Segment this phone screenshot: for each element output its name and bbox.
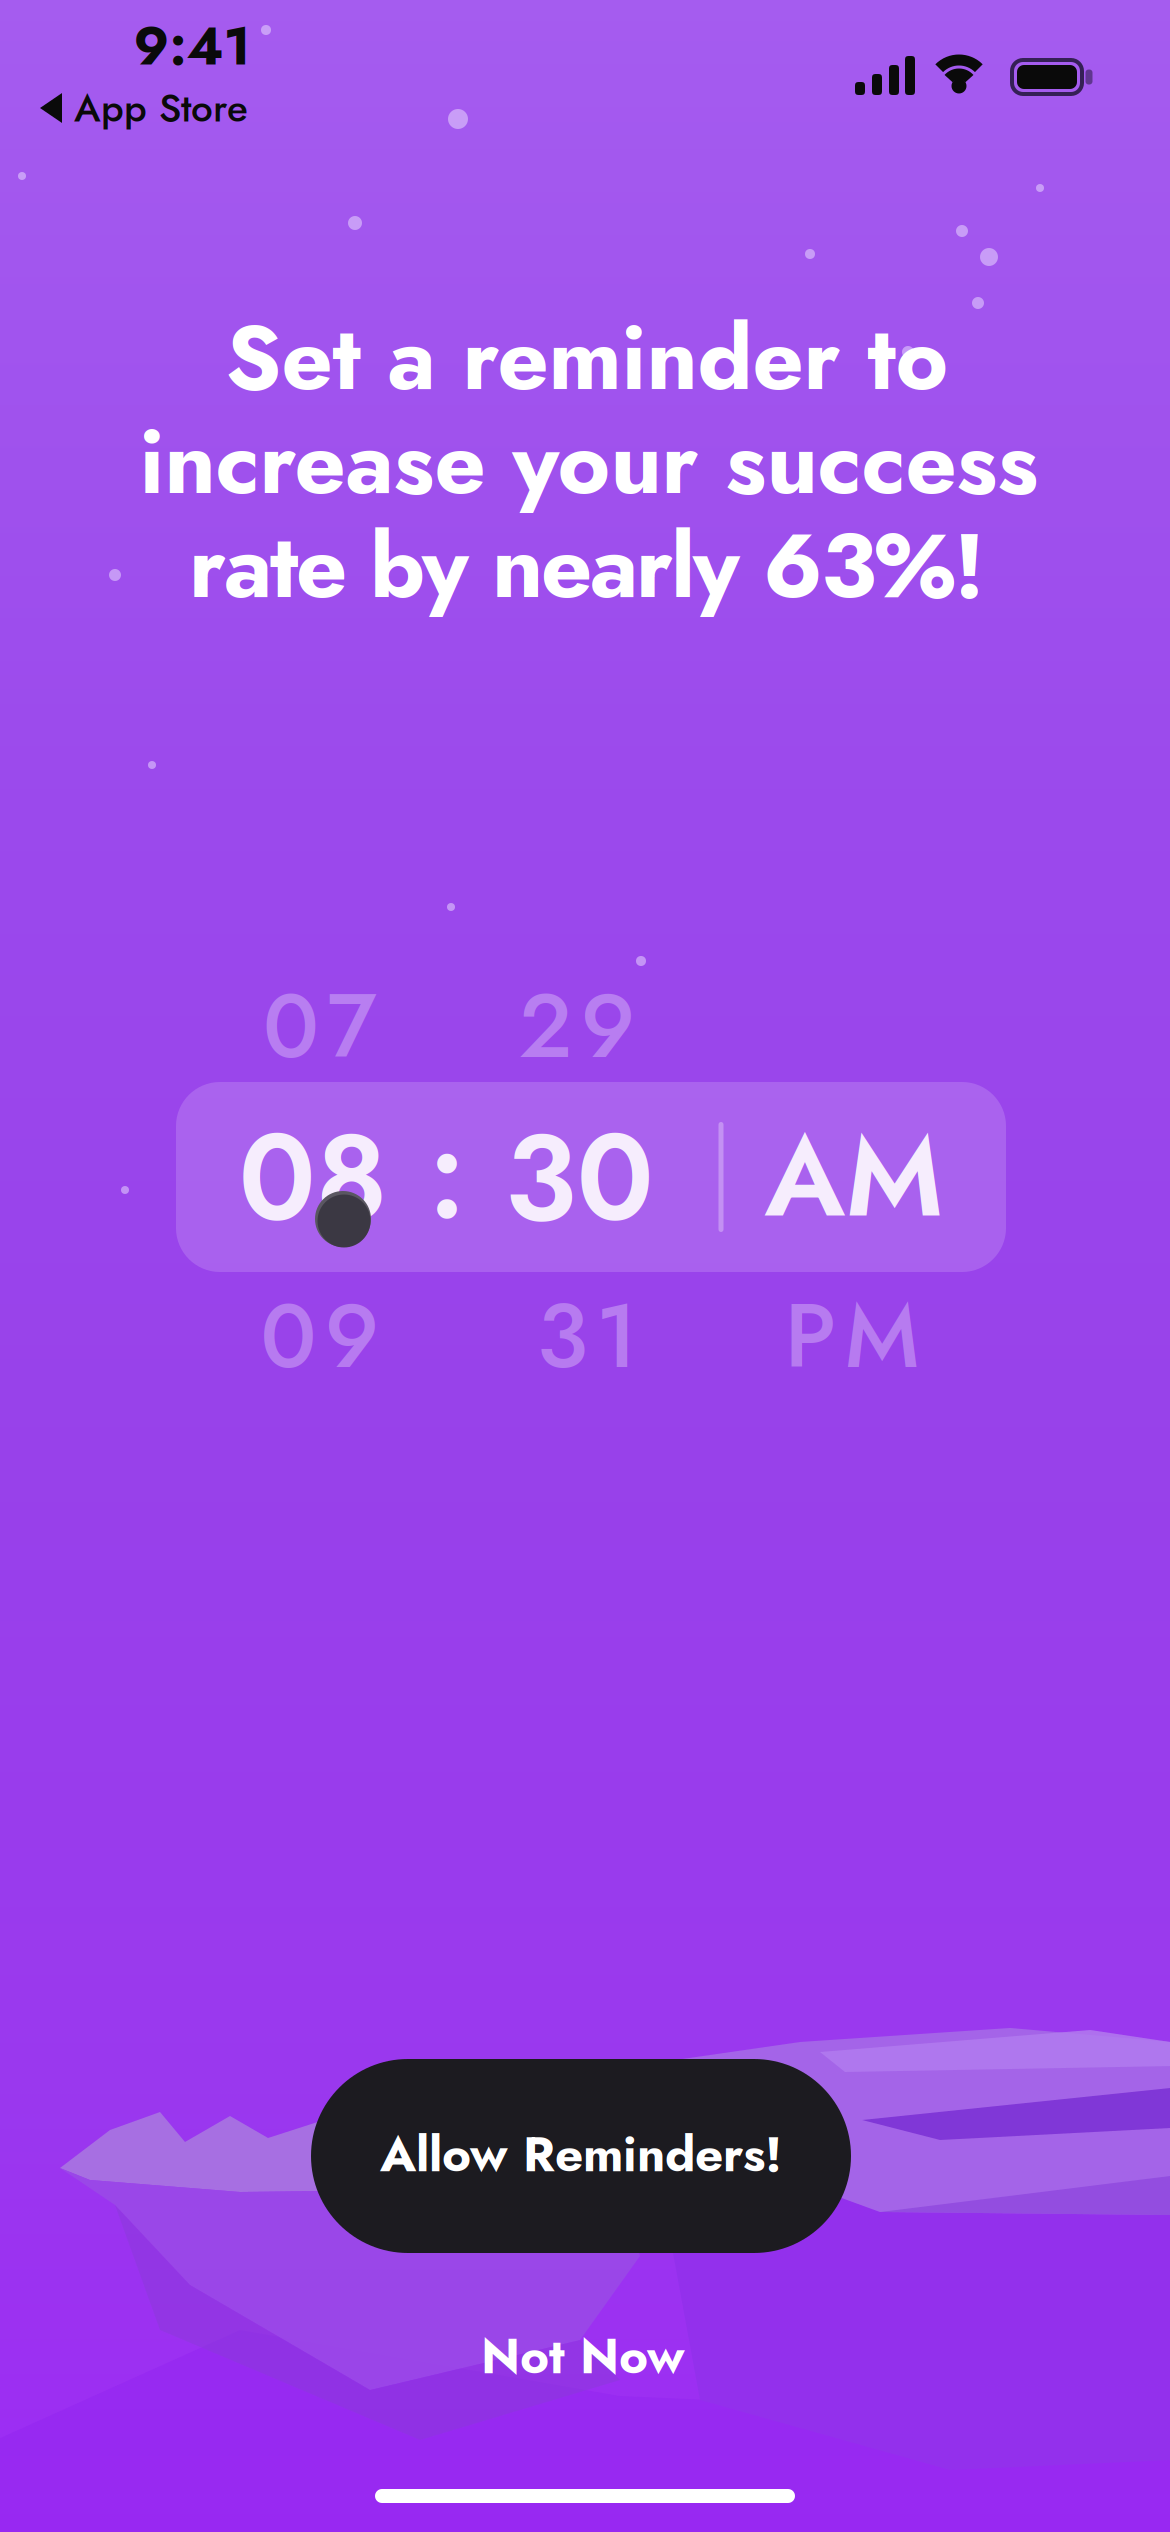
- staticText: 9:41: [133, 7, 250, 85]
- staticText: 09: [260, 1271, 379, 1401]
- staticText: 29: [518, 961, 635, 1091]
- staticText: 31: [536, 1271, 637, 1401]
- button[interactable]: Back to App Store: [40, 80, 248, 136]
- button[interactable]: Not Now: [403, 2306, 763, 2406]
- staticText: :: [428, 1087, 466, 1261]
- staticText: rate by nearly 63%!: [189, 501, 985, 631]
- staticText: App Store: [74, 80, 248, 136]
- staticText: 07: [263, 961, 377, 1091]
- button[interactable]: Time picker, 08:30 AM selected: [176, 1082, 1006, 1272]
- staticText: Set a reminder to: [225, 293, 948, 423]
- button[interactable]: Allow Reminders!: [311, 2059, 851, 2253]
- staticText: AM: [764, 1094, 943, 1258]
- staticText: increase your success: [139, 397, 1038, 527]
- staticText: PM: [784, 1271, 919, 1401]
- staticText: Not Now: [481, 2320, 685, 2392]
- staticText: Allow Reminders!: [380, 2118, 782, 2190]
- staticText: 30: [504, 1091, 653, 1265]
- staticText: 08: [238, 1091, 387, 1265]
